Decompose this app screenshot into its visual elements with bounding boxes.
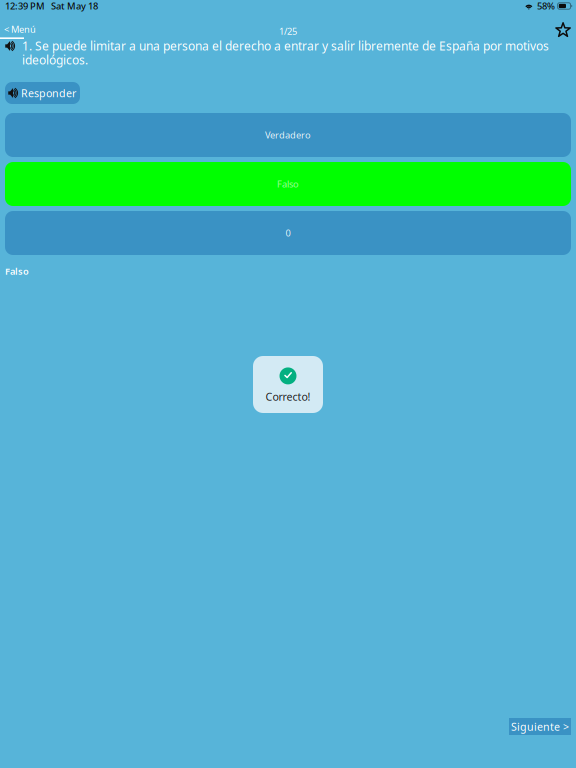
button[interactable]: 0	[5, 211, 571, 255]
staticText: Responder	[21, 86, 76, 100]
staticText: Correcto!	[265, 389, 310, 404]
staticText: 12:39 PM	[5, 0, 45, 12]
button[interactable]: < Menú	[0, 23, 36, 39]
staticText: 0	[285, 227, 290, 239]
staticText: Falso	[5, 265, 29, 277]
staticText: Siguiente >	[511, 719, 569, 734]
staticText: < Menú	[4, 23, 36, 35]
button[interactable]: Siguiente >	[509, 718, 571, 735]
staticText: 58%	[537, 0, 555, 12]
button[interactable]: Verdadero	[5, 113, 571, 157]
staticText: Sat May 18	[51, 0, 98, 12]
button[interactable]: Read question aloud	[5, 38, 17, 50]
staticText: 1. Se puede limitar a una persona el der…	[22, 38, 549, 68]
button[interactable]: Favorite	[554, 21, 572, 39]
button[interactable]: Falso	[5, 162, 571, 206]
staticText: 1/25	[279, 25, 297, 37]
button[interactable]: Responder	[5, 82, 80, 104]
staticText: Falso	[277, 178, 299, 190]
staticText: Verdadero	[265, 129, 311, 141]
